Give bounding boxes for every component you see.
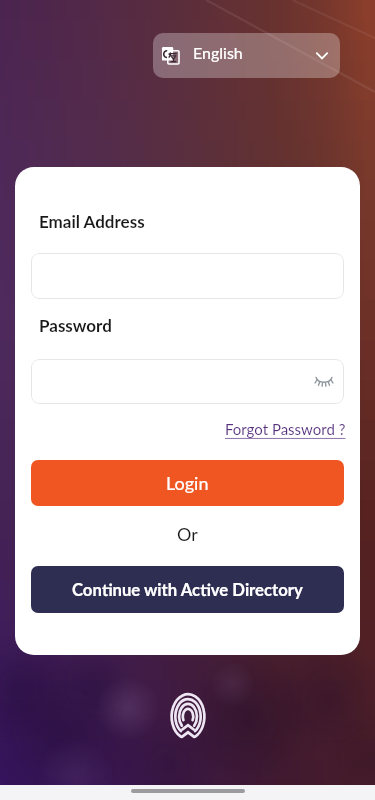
- staticText: Login: [166, 472, 209, 494]
- staticText: Or: [177, 523, 198, 545]
- button[interactable]: Login: [31, 460, 344, 506]
- staticText: Email Address: [39, 211, 145, 231]
- button[interactable]: Fingerprint login: [170, 694, 206, 741]
- button[interactable]: Toggle password visibility: [31, 359, 344, 404]
- staticText: English: [193, 43, 243, 62]
- button[interactable]: [31, 253, 344, 299]
- staticText: Password: [39, 315, 112, 335]
- button[interactable]: Continue with Active Directory: [31, 566, 344, 613]
- button[interactable]: English: [153, 33, 340, 78]
- staticText: Continue with Active Directory: [72, 580, 303, 600]
- button[interactable]: Forgot Password ?: [225, 420, 346, 438]
- button[interactable]: Toggle password visibility: [315, 377, 333, 387]
